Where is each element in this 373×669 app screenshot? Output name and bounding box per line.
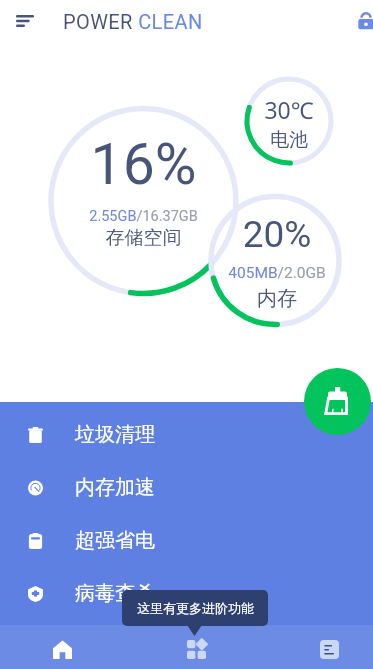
staticText: 405MB/2.0GB	[213, 264, 341, 282]
staticText: 内存加速	[75, 475, 155, 500]
button[interactable]: 超强省电	[0, 514, 373, 567]
staticText: 垃圾清理	[75, 422, 155, 447]
button[interactable]: Clean	[304, 368, 371, 435]
staticText: 16%	[51, 131, 236, 198]
staticText: 2.55GB/16.37GB	[51, 208, 236, 225]
staticText: 病毒查杀	[75, 581, 155, 606]
staticText: 内存	[213, 286, 341, 311]
staticText: 20%	[213, 213, 341, 256]
staticText: 这里有更多进阶功能	[137, 600, 254, 616]
button[interactable]: Tasks	[250, 625, 373, 669]
button[interactable]: 垃圾清理	[0, 408, 373, 461]
staticText: 电池	[247, 128, 331, 152]
staticText: 超强省电	[75, 528, 155, 553]
staticText: 30℃	[247, 94, 331, 125]
staticText: POWER CLEAN	[63, 10, 203, 33]
staticText: 存储空间	[51, 226, 236, 250]
button[interactable]: 内存加速	[0, 461, 373, 514]
button[interactable]: Tools	[125, 625, 250, 669]
button[interactable]: Home	[0, 625, 125, 669]
button[interactable]: 病毒查杀	[0, 567, 373, 620]
button[interactable]: Menu	[9, 5, 41, 37]
button[interactable]: Lock	[350, 5, 373, 37]
